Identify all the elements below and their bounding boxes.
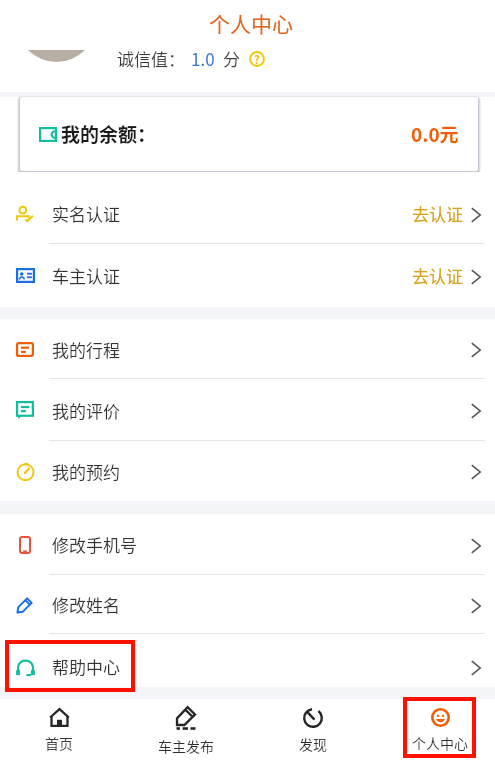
staticText: 我的余额：	[61, 120, 157, 148]
staticText: 我的行程	[52, 337, 120, 362]
staticText: 0.0元	[411, 120, 459, 148]
button[interactable]: 车主认证	[0, 244, 495, 307]
staticText: 个人中心	[412, 733, 468, 753]
button[interactable]: 帮助中心	[0, 640, 495, 693]
button[interactable]: 我的行程	[0, 319, 495, 379]
button[interactable]: 修改手机号	[0, 514, 495, 575]
button[interactable]: 我的预约	[0, 441, 495, 501]
staticText: 修改手机号	[52, 532, 137, 557]
button[interactable]: 实名认证	[0, 183, 495, 244]
button[interactable]: 我的余额：	[20, 97, 478, 171]
staticText: 诚信值：	[117, 46, 185, 71]
staticText: 车主发布	[158, 736, 214, 756]
staticText: 首页	[45, 733, 73, 753]
button[interactable]: 个人中心	[377, 699, 495, 762]
staticText: 修改姓名	[52, 592, 120, 617]
staticText: 实名认证	[52, 201, 120, 226]
button[interactable]: 修改姓名	[0, 575, 495, 634]
staticText: 个人中心	[209, 8, 293, 38]
staticText: 去认证	[412, 201, 463, 226]
button[interactable]: 车主发布	[122, 699, 249, 762]
staticText: 去认证	[412, 263, 463, 288]
staticText: 发现	[299, 734, 327, 754]
staticText: 1.0	[191, 46, 215, 71]
staticText: 帮助中心	[52, 654, 120, 679]
button[interactable]: 首页	[0, 699, 118, 762]
staticText: ?	[254, 51, 260, 67]
button[interactable]: 我的评价	[0, 379, 495, 441]
button[interactable]: 发现	[249, 699, 377, 762]
staticText: 分	[223, 46, 240, 71]
staticText: 车主认证	[52, 263, 120, 288]
staticText: 我的预约	[52, 459, 120, 484]
staticText: 我的评价	[52, 398, 120, 423]
